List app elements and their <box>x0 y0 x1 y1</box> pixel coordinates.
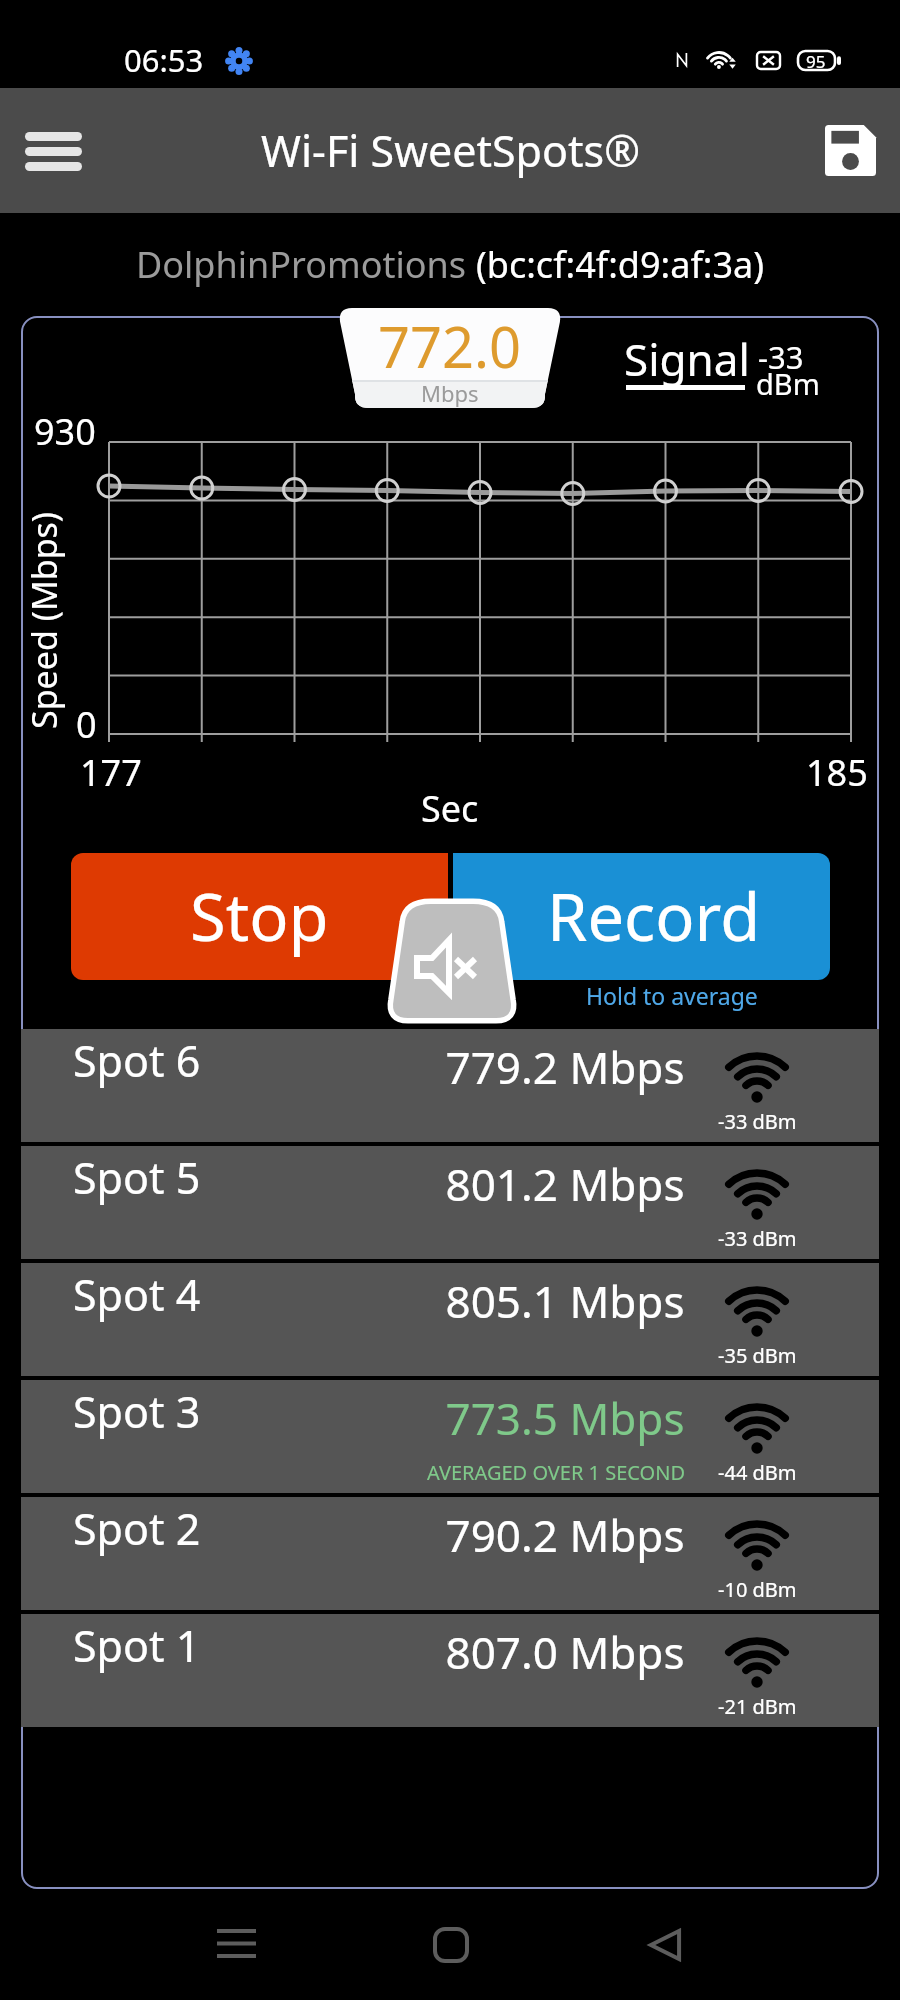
button[interactable]: Spot 6 <box>21 1029 879 1142</box>
button[interactable]: Home <box>407 1901 495 1989</box>
staticText: (bc:cf:4f:d9:af:3a) <box>476 240 765 289</box>
staticText: 185 <box>806 748 868 797</box>
staticText: Spot 6 <box>73 1031 201 1090</box>
staticText: Sec <box>421 784 479 833</box>
staticText: 807.0 Mbps <box>445 1622 685 1682</box>
staticText: Spot 4 <box>73 1265 201 1324</box>
button[interactable]: Record <box>453 853 830 980</box>
staticText: Stop <box>190 872 329 961</box>
staticText: -21 dBm <box>718 1693 797 1720</box>
staticText: 790.2 Mbps <box>445 1505 685 1565</box>
staticText: Signal <box>624 329 750 389</box>
staticText: AVERAGED OVER 1 SECOND <box>427 1459 685 1486</box>
staticText: 805.1 Mbps <box>445 1271 685 1331</box>
button[interactable]: Spot 3 <box>21 1380 879 1493</box>
button[interactable]: Recents <box>192 1899 280 1987</box>
button[interactable]: Spot 2 <box>21 1497 879 1610</box>
button[interactable]: Mute sound <box>386 900 518 1022</box>
staticText: 773.5 Mbps <box>445 1388 685 1448</box>
staticText: Wi-Fi SweetSpots® <box>261 121 640 180</box>
staticText: Spot 1 <box>73 1616 201 1675</box>
staticText: -33 dBm <box>718 1108 797 1135</box>
staticText: -33 <box>758 336 804 378</box>
button[interactable]: Back <box>621 1901 709 1989</box>
staticText: -35 dBm <box>718 1342 797 1369</box>
staticText: 177 <box>80 748 142 797</box>
staticText: -44 dBm <box>718 1459 797 1486</box>
staticText: 779.2 Mbps <box>445 1037 685 1097</box>
staticText: Spot 3 <box>73 1382 201 1441</box>
staticText: 06:53 <box>124 39 204 81</box>
button[interactable]: Menu <box>7 114 100 189</box>
staticText: dBm <box>756 364 820 403</box>
staticText: 95 <box>806 50 826 71</box>
button[interactable]: Stop <box>71 853 448 980</box>
staticText: Spot 2 <box>73 1499 201 1558</box>
staticText: Hold to average <box>586 980 758 1011</box>
button[interactable]: Save <box>805 105 896 196</box>
button[interactable]: Spot 1 <box>21 1614 879 1727</box>
staticText: 801.2 Mbps <box>445 1154 685 1214</box>
button[interactable]: Spot 5 <box>21 1146 879 1259</box>
staticText: Spot 5 <box>73 1148 201 1207</box>
staticText: Speed (Mbps) <box>21 511 67 729</box>
staticText: DolphinPromotions <box>136 240 476 289</box>
staticText: 930 <box>34 407 96 456</box>
staticText: -33 dBm <box>718 1225 797 1252</box>
button[interactable]: Spot 4 <box>21 1263 879 1376</box>
staticText: 772.0 <box>378 308 522 384</box>
staticText: Record <box>547 872 761 961</box>
staticText: Mbps <box>421 378 479 408</box>
staticText: -10 dBm <box>718 1576 797 1603</box>
staticText: 0 <box>76 700 97 749</box>
